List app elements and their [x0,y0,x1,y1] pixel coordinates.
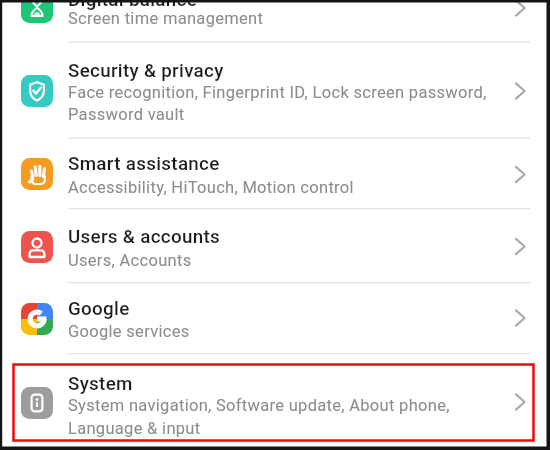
staticText: Screen time management [68,9,264,28]
staticText: Google [68,298,130,320]
staticText: Users, Accounts [68,251,192,270]
staticText: Smart assistance [68,153,220,175]
staticText: Face recognition, Fingerprint ID, Lock s… [68,83,487,102]
button[interactable] [2,138,546,209]
staticText: Users & accounts [68,226,220,248]
staticText: Digital balance [68,0,198,11]
staticText: Google services [68,322,190,341]
button[interactable] [2,353,546,447]
staticText: Security & privacy [68,60,224,82]
staticText: System navigation, Software update, Abou… [68,396,450,415]
staticText: Accessibility, HiTouch, Motion control [68,178,354,197]
button[interactable] [2,0,546,42]
button[interactable] [2,208,546,282]
button[interactable] [2,42,546,138]
button[interactable] [2,282,546,353]
staticText: Language & input [68,419,201,438]
staticText: Password vault [68,105,185,124]
staticText: System [68,373,133,395]
